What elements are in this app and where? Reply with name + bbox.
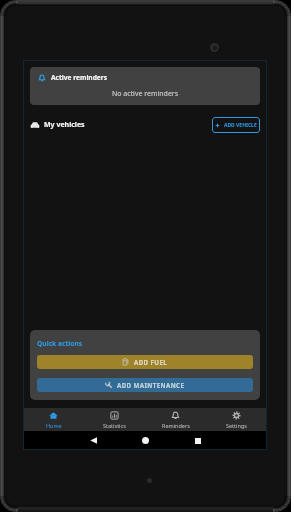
button[interactable]: Recent apps xyxy=(187,431,208,450)
staticText: Quick actions xyxy=(37,339,83,348)
staticText: ADD MAINTENANCE xyxy=(117,381,185,389)
button[interactable]: Home xyxy=(23,408,84,431)
staticText: No active reminders xyxy=(30,89,260,99)
button[interactable]: ADD FUEL xyxy=(37,355,253,369)
button[interactable]: Settings xyxy=(206,408,267,431)
staticText: Statistics xyxy=(103,422,126,429)
staticText: My vehicles xyxy=(44,120,85,130)
button[interactable]: Reminders xyxy=(145,408,206,431)
button[interactable]: ADD VEHICLE xyxy=(212,117,260,133)
staticText: ADD FUEL xyxy=(134,358,168,366)
button[interactable]: ADD MAINTENANCE xyxy=(37,378,253,392)
button[interactable]: Statistics xyxy=(84,408,145,431)
staticText: Home xyxy=(46,422,62,429)
staticText: Active reminders xyxy=(51,73,108,82)
staticText: Reminders xyxy=(162,422,190,429)
staticText: Settings xyxy=(226,422,247,429)
button[interactable]: Home xyxy=(135,431,156,450)
staticText: ADD VEHICLE xyxy=(224,122,257,129)
button[interactable]: Back xyxy=(83,431,104,450)
